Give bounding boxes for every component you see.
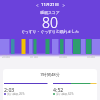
staticText: 2:03: [4, 86, 15, 93]
staticText: 深い睡眠 62%: [56, 92, 74, 96]
button[interactable]: 4:52: [53, 83, 96, 97]
staticText: 睡眠スコア: [0, 10, 100, 15]
staticText: 80: [0, 13, 100, 32]
staticText: ぐっすり・ぐっすりと眠れました: [0, 29, 100, 34]
staticText: 03:40: [59, 55, 68, 59]
staticText: 01:40: [30, 55, 39, 59]
button[interactable]: 7時間48分: [3, 69, 97, 100]
button[interactable]: 2:03: [4, 83, 47, 97]
staticText: 05:40: [87, 55, 96, 59]
staticText: 浅い睡眠 26%: [7, 92, 25, 96]
staticText: 11月21日: [41, 2, 59, 8]
staticText: 4:52: [53, 86, 64, 93]
staticText: 23:40: [2, 55, 11, 59]
staticText: 7時間48分: [3, 72, 97, 78]
button[interactable]: Next day: [60, 2, 66, 8]
button[interactable]: Previous day: [34, 2, 40, 8]
